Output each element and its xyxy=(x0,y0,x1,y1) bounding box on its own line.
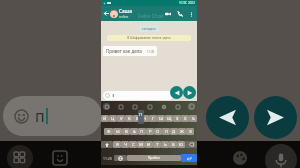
button[interactable]: Keyboard tool 1 xyxy=(117,103,124,110)
button[interactable]: Е xyxy=(133,115,141,122)
button[interactable]: Backspace xyxy=(185,141,197,148)
button[interactable]: Back xyxy=(103,10,110,17)
staticText: Н xyxy=(143,116,147,122)
staticText: И xyxy=(147,142,151,148)
staticText: п xyxy=(35,105,45,127)
button[interactable]: Theme xyxy=(230,148,250,168)
button[interactable] xyxy=(103,91,173,100)
staticText: Fake Chat xyxy=(138,12,164,19)
button[interactable]: Ю xyxy=(177,141,185,148)
button[interactable]: Ф xyxy=(104,128,113,135)
button[interactable]: Clock xyxy=(101,152,114,164)
button[interactable]: О xyxy=(154,128,162,135)
button[interactable]: Keyboard tool 4 xyxy=(160,103,167,110)
button[interactable]: Л xyxy=(162,128,170,135)
button[interactable]: Й xyxy=(101,115,109,122)
button[interactable]: Next step xyxy=(183,86,196,99)
button[interactable]: С xyxy=(129,141,137,148)
staticText: сегодня xyxy=(142,26,156,31)
staticText: П xyxy=(140,129,144,135)
button[interactable]: Voice input xyxy=(188,103,195,110)
staticText: Ъ xyxy=(192,116,195,122)
staticText: В Шифрование текста здесь xyxy=(109,36,189,40)
staticText: 11:28 xyxy=(103,156,112,161)
button[interactable]: Keyboard tool 5 xyxy=(174,103,181,110)
button[interactable]: п xyxy=(3,96,102,136)
staticText: Э xyxy=(189,129,192,135)
staticText: Ц xyxy=(111,116,115,122)
button[interactable]: Ш xyxy=(157,115,165,122)
button[interactable]: Б xyxy=(169,141,177,148)
staticText: Б xyxy=(172,142,175,148)
button[interactable]: Саша xyxy=(119,8,132,19)
button[interactable]: Д xyxy=(170,128,178,135)
button[interactable]: К xyxy=(125,115,133,122)
button[interactable]: П xyxy=(138,128,146,135)
staticText: М xyxy=(139,142,143,148)
button[interactable]: В xyxy=(122,128,130,135)
button[interactable]: More options xyxy=(187,10,195,18)
staticText: Ж xyxy=(180,129,184,135)
staticText: Пробел xyxy=(148,156,160,160)
button[interactable]: А xyxy=(130,128,138,135)
staticText: Ь xyxy=(164,142,167,148)
button[interactable]: Т xyxy=(153,141,161,148)
button[interactable]: Video call xyxy=(164,10,172,18)
button[interactable]: Previous step xyxy=(170,86,183,99)
button[interactable]: Ч xyxy=(121,141,129,148)
button[interactable]: Г xyxy=(149,115,157,122)
button[interactable]: Call xyxy=(176,10,184,18)
button[interactable]: Contact photo xyxy=(110,10,118,18)
staticText: Й xyxy=(103,116,107,122)
staticText: 11:28 xyxy=(147,50,155,54)
staticText: Ы xyxy=(116,129,120,135)
staticText: Ю xyxy=(179,142,184,148)
staticText: Я xyxy=(116,142,119,148)
button[interactable]: Щ xyxy=(165,115,173,122)
button[interactable]: Keyboard tool 3 xyxy=(146,103,153,110)
button[interactable]: Voice input xyxy=(265,144,297,168)
button[interactable]: И xyxy=(145,141,153,148)
button[interactable]: Я xyxy=(113,141,121,148)
button[interactable]: Пробел xyxy=(127,155,181,161)
staticText: Щ xyxy=(167,116,172,122)
staticText: С xyxy=(132,142,135,148)
button[interactable]: У xyxy=(117,115,125,122)
staticText: Ш xyxy=(159,116,164,122)
button[interactable]: Enter xyxy=(181,154,197,162)
staticText: У xyxy=(120,116,123,122)
button[interactable]: Ь xyxy=(161,141,169,148)
button[interactable]: Change language xyxy=(114,155,127,161)
staticText: online xyxy=(119,15,129,19)
staticText: Д xyxy=(172,129,176,135)
button[interactable]: Google xyxy=(103,103,110,110)
button[interactable]: Н xyxy=(141,115,149,122)
staticText: Привет как дела xyxy=(106,48,142,54)
button[interactable]: Ъ xyxy=(189,115,197,122)
staticText: Т xyxy=(156,142,159,148)
button[interactable]: Э xyxy=(186,128,194,135)
staticText: Ч xyxy=(124,142,127,148)
staticText: К xyxy=(128,116,131,122)
button[interactable]: Keyboard tool 2 xyxy=(131,103,138,110)
staticText: П xyxy=(139,112,143,118)
button[interactable]: Ж xyxy=(178,128,186,135)
staticText: Саша xyxy=(119,8,132,15)
button[interactable]: Shift xyxy=(101,141,113,148)
button[interactable]: Previous xyxy=(206,96,249,139)
staticText: З xyxy=(176,116,179,122)
button[interactable]: Х xyxy=(181,115,189,122)
button[interactable]: Ы xyxy=(113,128,122,135)
staticText: Л xyxy=(165,129,168,135)
staticText: Р xyxy=(149,129,152,135)
button[interactable]: Р xyxy=(146,128,154,135)
staticText: Ф xyxy=(107,129,111,135)
button[interactable]: Ц xyxy=(109,115,117,122)
button[interactable]: Stickers xyxy=(50,148,70,168)
button[interactable]: З xyxy=(173,115,181,122)
staticText: А xyxy=(133,129,136,135)
button[interactable]: М xyxy=(137,141,145,148)
staticText: Х xyxy=(184,116,187,122)
button[interactable]: Apps xyxy=(7,145,33,168)
button[interactable]: Next xyxy=(254,96,297,139)
